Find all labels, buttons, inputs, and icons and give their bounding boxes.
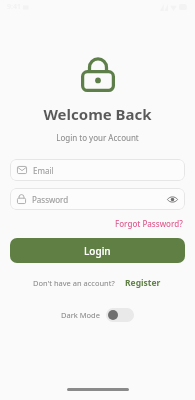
- staticText: Email: [33, 165, 54, 176]
- button[interactable]: Forgot Password?: [113, 217, 185, 230]
- staticText: Register: [125, 277, 161, 289]
- staticText: Login: [84, 244, 111, 258]
- button[interactable]: Register: [123, 276, 163, 290]
- staticText: Forgot Password?: [115, 218, 183, 229]
- button[interactable]: Show password: [165, 192, 179, 206]
- button[interactable]: Login: [10, 238, 185, 263]
- staticText: Welcome Back: [43, 104, 152, 124]
- staticText: Password: [32, 194, 69, 205]
- button[interactable]: Password: [10, 188, 185, 210]
- button[interactable]: Dark Mode: [58, 306, 137, 324]
- staticText: Dark Mode: [61, 310, 100, 320]
- staticText: Login to your Account: [56, 132, 139, 143]
- staticText: Don't have an account?: [33, 278, 115, 288]
- button[interactable]: Email: [10, 159, 185, 181]
